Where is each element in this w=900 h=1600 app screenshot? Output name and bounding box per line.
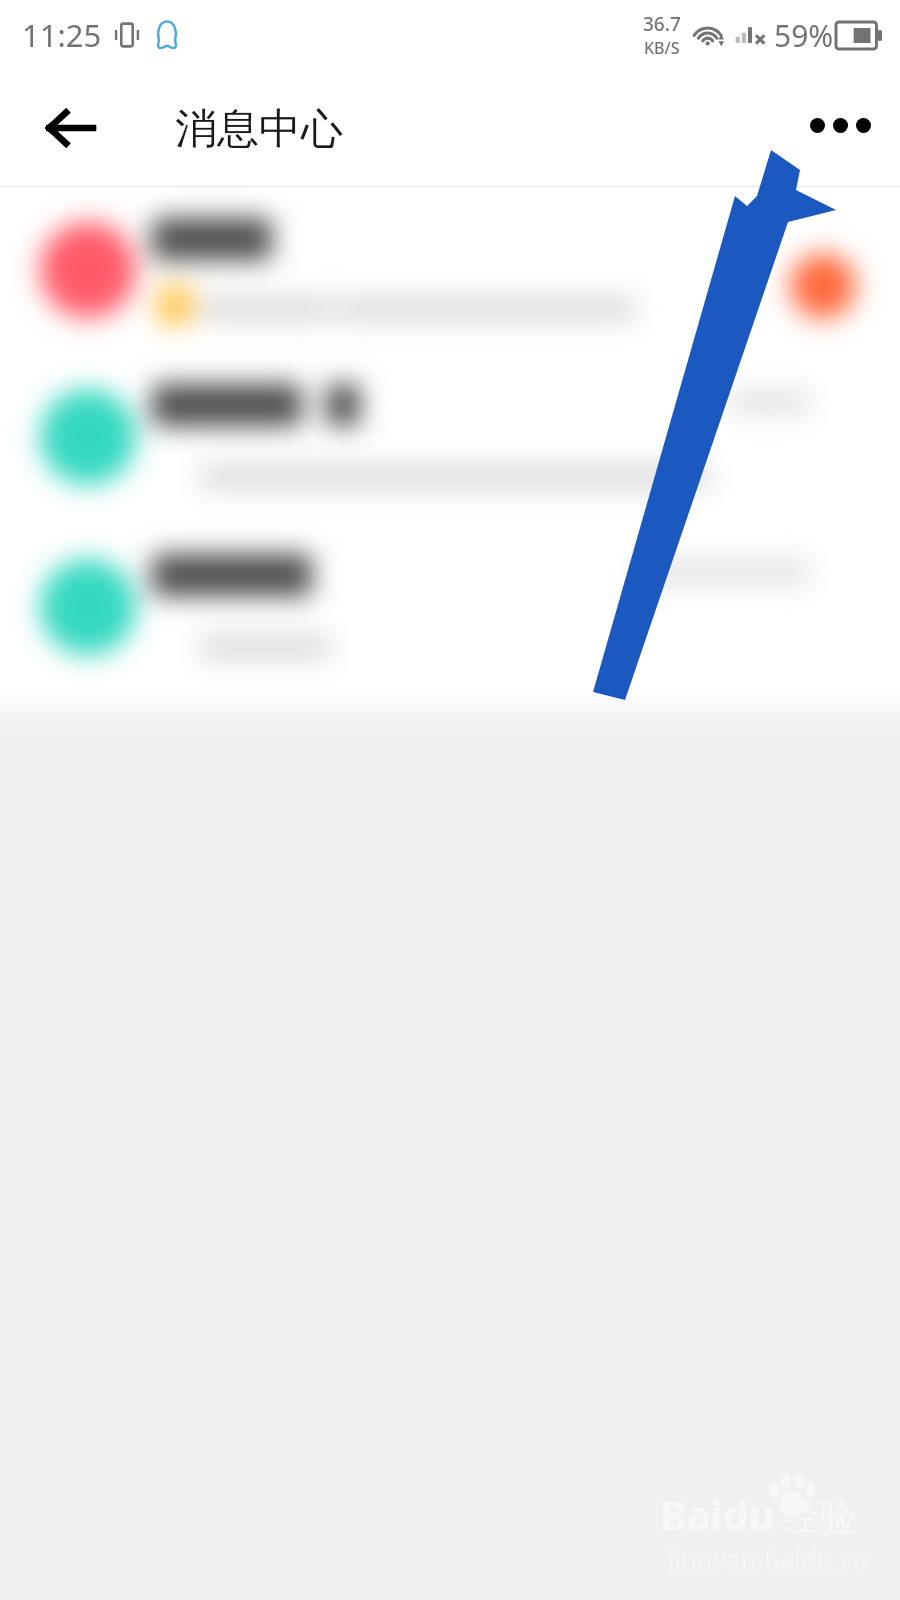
button[interactable] [0, 352, 900, 522]
button[interactable]: 更多选项 [794, 79, 886, 171]
staticText: 经验 [781, 1493, 857, 1541]
staticText: 36.7 [643, 11, 681, 37]
button[interactable] [0, 522, 900, 692]
button[interactable]: 返回 [24, 82, 116, 174]
staticText: Bai [660, 1487, 723, 1541]
staticText: 消息中心 [175, 103, 343, 156]
button[interactable] [0, 187, 900, 352]
staticText: 11:25 [22, 14, 102, 56]
staticText: 59% [774, 15, 834, 56]
staticText: KB/S [644, 37, 680, 59]
